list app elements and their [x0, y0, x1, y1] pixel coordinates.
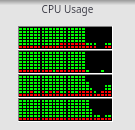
staticText: CPU Usage — [0, 2, 135, 16]
